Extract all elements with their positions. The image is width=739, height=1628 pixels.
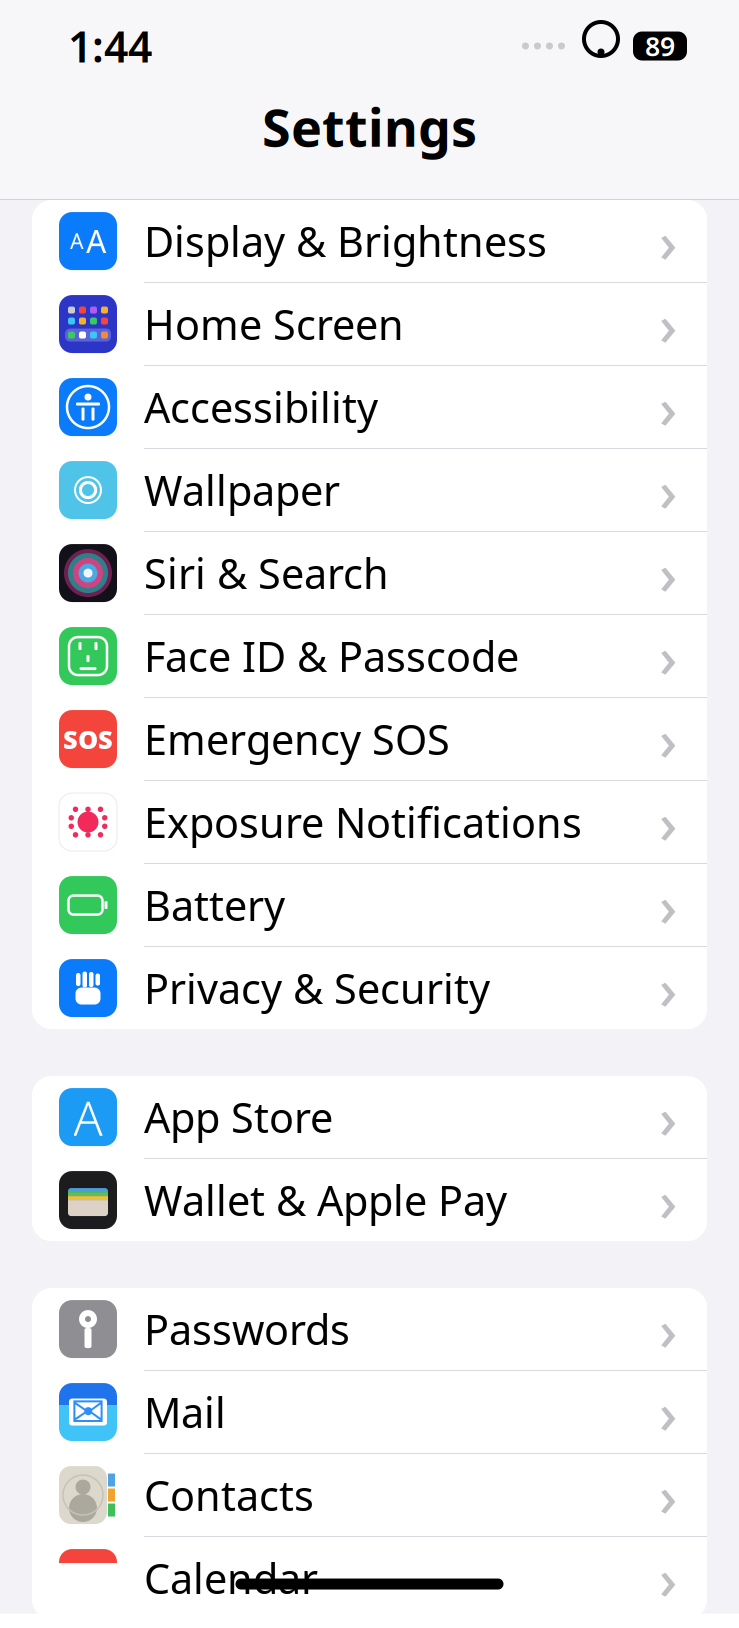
staticText: › bbox=[659, 287, 677, 361]
staticText: Siri & Search bbox=[144, 546, 389, 600]
button[interactable]: SOS bbox=[32, 698, 707, 780]
button[interactable]: Home Screen bbox=[32, 283, 707, 365]
staticText: Emergency SOS bbox=[144, 712, 450, 766]
staticText: A bbox=[73, 1085, 102, 1149]
staticText: Accessibility bbox=[144, 380, 378, 434]
button[interactable]: Passwords bbox=[32, 1288, 707, 1370]
staticText: Calendar bbox=[144, 1551, 318, 1605]
button[interactable]: Exposure Notifications bbox=[32, 781, 707, 863]
staticText: 1:44 bbox=[68, 18, 152, 74]
staticText: › bbox=[659, 1458, 677, 1532]
staticText: › bbox=[659, 204, 677, 278]
staticText: Mail bbox=[144, 1385, 226, 1439]
staticText: Passwords bbox=[144, 1302, 350, 1356]
staticText: › bbox=[659, 370, 677, 444]
staticText: › bbox=[659, 1292, 677, 1366]
staticText: › bbox=[659, 785, 677, 859]
staticText: Privacy & Security bbox=[144, 961, 490, 1015]
button[interactable]: Wallpaper bbox=[32, 449, 707, 531]
staticText: Exposure Notifications bbox=[144, 795, 582, 849]
button[interactable]: Privacy & Security bbox=[32, 947, 707, 1029]
staticText: Face ID & Passcode bbox=[144, 629, 519, 683]
staticText: › bbox=[659, 536, 677, 610]
button[interactable]: Wallet & Apple Pay bbox=[32, 1159, 707, 1241]
staticText: ✉ bbox=[70, 1389, 105, 1435]
button[interactable]: Accessibility bbox=[32, 366, 707, 448]
staticText: Display & Brightness bbox=[144, 214, 547, 268]
staticText: › bbox=[659, 1080, 677, 1154]
staticText: 89 bbox=[645, 28, 675, 64]
button[interactable]: A bbox=[32, 1076, 707, 1158]
button[interactable]: Contacts bbox=[32, 1454, 707, 1536]
staticText: Wallpaper bbox=[144, 463, 340, 517]
button[interactable]: Face ID & Passcode bbox=[32, 615, 707, 697]
staticText: Settings bbox=[262, 92, 477, 161]
staticText: Battery bbox=[144, 878, 285, 932]
staticText: › bbox=[659, 951, 677, 1025]
button[interactable]: Battery bbox=[32, 864, 707, 946]
staticText: › bbox=[659, 1163, 677, 1237]
staticText: A bbox=[70, 227, 84, 255]
staticText: › bbox=[659, 619, 677, 693]
staticText: App Store bbox=[144, 1090, 333, 1144]
button[interactable]: Siri & Search bbox=[32, 532, 707, 614]
staticText: SOS bbox=[63, 722, 113, 756]
staticText: › bbox=[659, 453, 677, 527]
staticText: › bbox=[659, 1375, 677, 1449]
staticText: › bbox=[659, 1541, 677, 1615]
staticText: Contacts bbox=[144, 1468, 314, 1522]
staticText: › bbox=[659, 702, 677, 776]
staticText: A bbox=[86, 220, 106, 262]
button[interactable]: Calendar bbox=[32, 1537, 707, 1619]
staticText: Home Screen bbox=[144, 297, 404, 351]
button[interactable]: ✉ bbox=[32, 1371, 707, 1453]
staticText: › bbox=[659, 868, 677, 942]
button[interactable]: A bbox=[32, 200, 707, 282]
staticText: Wallet & Apple Pay bbox=[144, 1173, 507, 1227]
